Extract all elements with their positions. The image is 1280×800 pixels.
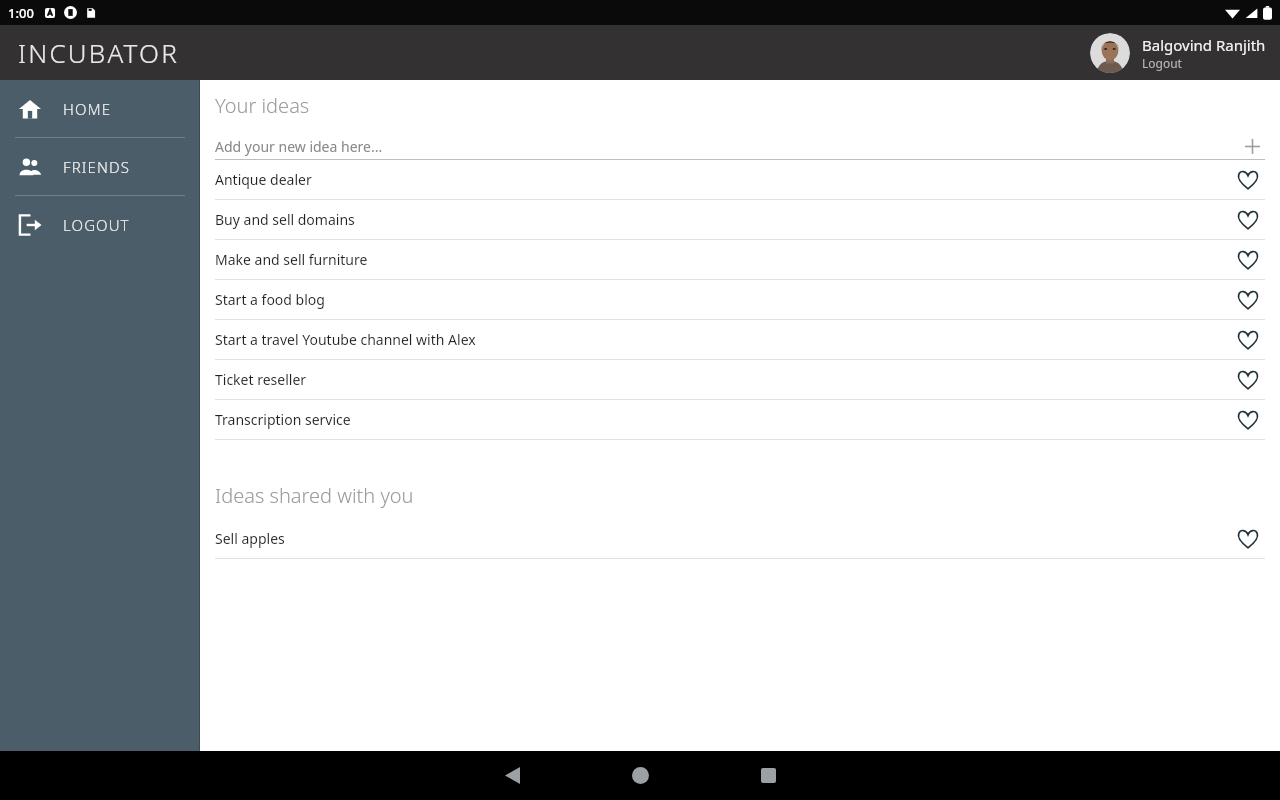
- button[interactable]: Transcription service: [215, 400, 1265, 439]
- staticText: Transcription service: [215, 410, 1231, 429]
- button[interactable]: Favourite: [1231, 522, 1265, 556]
- button[interactable]: Add your new idea here...: [215, 133, 1265, 159]
- staticText: Make and sell furniture: [215, 250, 1231, 269]
- button[interactable]: FRIENDS: [0, 138, 200, 195]
- staticText: Start a food blog: [215, 290, 1231, 309]
- staticText: Logout: [1142, 55, 1182, 71]
- staticText: 1:00: [8, 4, 34, 22]
- button[interactable]: Balgovind Ranjith: [1084, 29, 1272, 77]
- staticText: Add your new idea here...: [215, 137, 1239, 156]
- button[interactable]: Make and sell furniture: [215, 240, 1265, 279]
- button[interactable]: Sell apples: [215, 519, 1265, 558]
- staticText: Your ideas: [215, 92, 310, 119]
- button[interactable]: Antique dealer: [215, 160, 1265, 199]
- staticText: INCUBATOR: [18, 35, 179, 70]
- staticText: Buy and sell domains: [215, 210, 1231, 229]
- staticText: Ideas shared with you: [215, 482, 414, 509]
- button[interactable]: Add idea: [1239, 133, 1265, 159]
- button[interactable]: Buy and sell domains: [215, 200, 1265, 239]
- button[interactable]: Favourite: [1231, 363, 1265, 397]
- button[interactable]: Favourite: [1231, 403, 1265, 437]
- button[interactable]: HOME: [0, 80, 200, 137]
- staticText: Balgovind Ranjith: [1142, 35, 1266, 55]
- button[interactable]: Favourite: [1231, 323, 1265, 357]
- button[interactable]: Home: [590, 751, 690, 800]
- button[interactable]: Favourite: [1231, 283, 1265, 317]
- staticText: FRIENDS: [63, 157, 131, 177]
- staticText: Start a travel Youtube channel with Alex: [215, 330, 1231, 349]
- staticText: Sell apples: [215, 529, 1231, 548]
- button[interactable]: Recent apps: [718, 751, 818, 800]
- staticText: Antique dealer: [215, 170, 1231, 189]
- staticText: LOGOUT: [63, 215, 130, 235]
- button[interactable]: Favourite: [1231, 163, 1265, 197]
- staticText: Ticket reseller: [215, 370, 1231, 389]
- staticText: HOME: [63, 99, 112, 119]
- button[interactable]: Favourite: [1231, 243, 1265, 277]
- button[interactable]: Start a food blog: [215, 280, 1265, 319]
- button[interactable]: LOGOUT: [0, 196, 200, 253]
- button[interactable]: Start a travel Youtube channel with Alex: [215, 320, 1265, 359]
- button[interactable]: Back: [462, 751, 562, 800]
- button[interactable]: Favourite: [1231, 203, 1265, 237]
- button[interactable]: Ticket reseller: [215, 360, 1265, 399]
